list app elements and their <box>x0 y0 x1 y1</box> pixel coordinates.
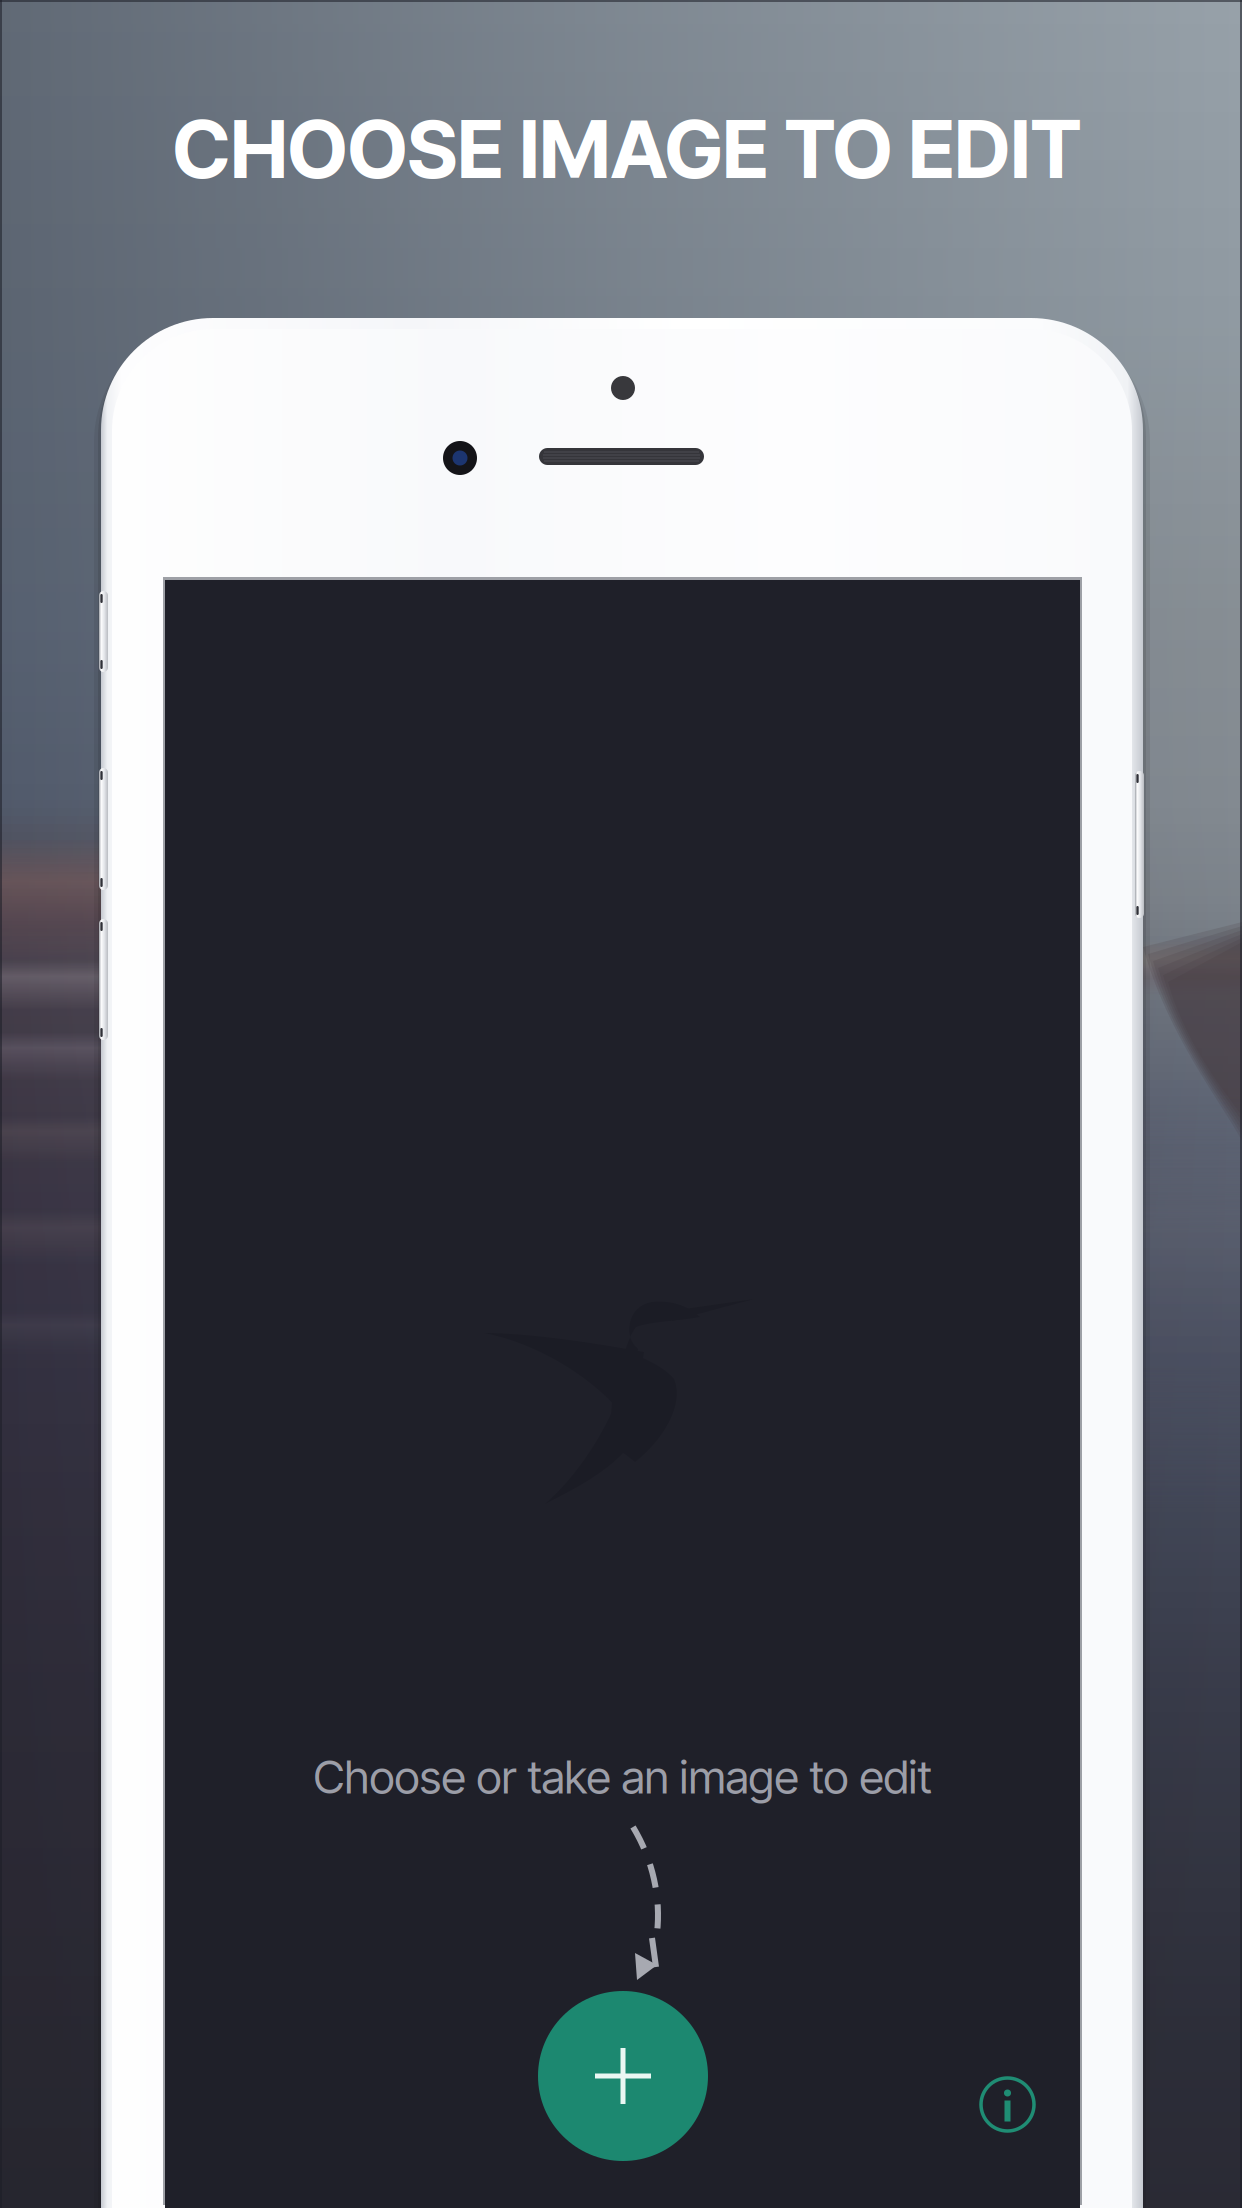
button[interactable]: Add image <box>538 1991 708 2161</box>
staticText: Choose or take an image to edit <box>313 1750 931 1804</box>
button[interactable]: Info <box>981 2078 1034 2131</box>
staticText: CHOOSE IMAGE TO EDIT <box>172 101 1081 197</box>
